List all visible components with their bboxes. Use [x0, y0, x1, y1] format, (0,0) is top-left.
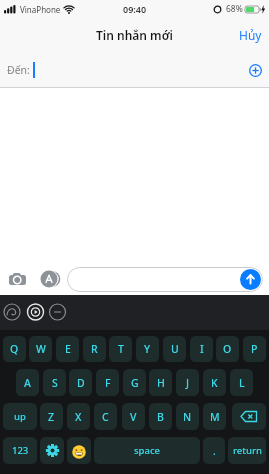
staticText: Z — [48, 410, 55, 424]
button[interactable]: K — [203, 369, 226, 396]
button[interactable]: return — [228, 437, 266, 464]
button[interactable]: Q — [3, 336, 26, 362]
staticText: Y — [144, 342, 151, 356]
staticText: X — [75, 410, 82, 424]
staticText: B — [157, 410, 164, 424]
button[interactable]: U — [163, 336, 186, 362]
button[interactable]: up — [3, 403, 37, 430]
button[interactable]: G — [123, 369, 146, 396]
staticText: C — [102, 410, 109, 424]
staticText: 68% — [226, 3, 243, 15]
button[interactable]: R — [83, 336, 106, 362]
button[interactable]: S — [43, 369, 66, 396]
button[interactable] — [67, 437, 91, 464]
button[interactable]: F — [96, 369, 119, 396]
staticText: . — [213, 444, 216, 458]
staticText: H — [157, 376, 165, 390]
staticText: space — [134, 444, 161, 457]
button[interactable] — [240, 269, 261, 290]
button[interactable] — [40, 270, 61, 288]
button[interactable]: J — [176, 369, 199, 396]
button[interactable]: C — [94, 403, 117, 430]
staticText: 123 — [12, 444, 29, 457]
button[interactable]: E — [56, 336, 79, 362]
button[interactable]: T — [109, 336, 132, 362]
staticText: J — [186, 376, 190, 390]
button[interactable]: A — [16, 369, 39, 396]
staticText: G — [131, 376, 139, 390]
button[interactable] — [40, 437, 64, 464]
button[interactable] — [9, 272, 27, 286]
button[interactable]: 123 — [3, 437, 37, 464]
button[interactable]: Z — [40, 403, 63, 430]
staticText: return — [233, 444, 262, 457]
staticText: O — [223, 342, 232, 356]
staticText: U — [171, 342, 179, 356]
button[interactable]: H — [149, 369, 172, 396]
staticText: E — [65, 342, 71, 356]
button[interactable] — [248, 63, 262, 77]
button[interactable]: N — [176, 403, 199, 430]
staticText: P — [251, 342, 258, 356]
staticText: Tin nhắn mới — [96, 27, 173, 43]
staticText: Đến: — [7, 63, 30, 77]
button[interactable]: P — [243, 336, 266, 362]
button[interactable]: space — [94, 437, 200, 464]
staticText: M — [210, 410, 220, 424]
button[interactable]: I — [190, 336, 213, 362]
button[interactable]: M — [203, 403, 226, 430]
button[interactable]: O — [216, 336, 239, 362]
button[interactable]: D — [69, 369, 92, 396]
staticText: L — [239, 376, 245, 390]
button[interactable]: Y — [136, 336, 159, 362]
staticText: Hủy — [239, 27, 262, 43]
staticText: D — [77, 376, 85, 390]
button[interactable] — [232, 403, 266, 430]
staticText: W — [36, 342, 46, 356]
staticText: N — [183, 410, 192, 424]
staticText: K — [211, 376, 218, 390]
button[interactable]: B — [149, 403, 172, 430]
staticText: I — [200, 342, 204, 356]
button[interactable]: W — [29, 336, 52, 362]
button[interactable] — [67, 267, 263, 292]
staticText: F — [105, 376, 111, 390]
staticText: A — [24, 376, 31, 390]
staticText: R — [91, 342, 98, 356]
button[interactable]: X — [67, 403, 90, 430]
staticText: S — [52, 376, 58, 390]
staticText: Q — [10, 342, 19, 356]
button[interactable]: Hủy — [239, 27, 262, 43]
staticText: 09:40 — [123, 3, 147, 15]
button[interactable]: . — [203, 437, 225, 464]
staticText: T — [118, 342, 124, 356]
button[interactable]: L — [230, 369, 253, 396]
staticText: V — [130, 410, 137, 424]
button[interactable]: V — [122, 403, 145, 430]
staticText: VinaPhone — [20, 4, 61, 15]
staticText: up — [14, 410, 26, 423]
